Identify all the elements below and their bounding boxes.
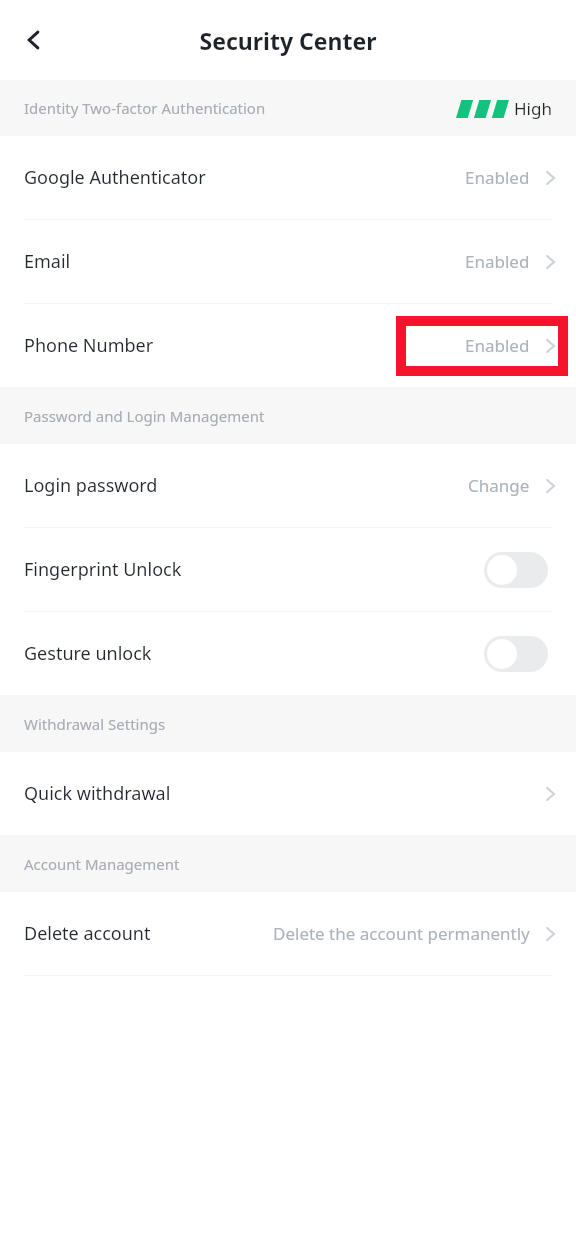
staticText: Phone Number [24, 333, 154, 358]
staticText: Google Authenticator [24, 165, 206, 190]
button[interactable]: Phone Number [0, 304, 576, 387]
staticText: Change [468, 474, 530, 497]
button[interactable]: Google Authenticator [0, 136, 576, 219]
button[interactable]: Email [0, 220, 576, 303]
staticText: Delete account [24, 921, 151, 946]
staticText: Enabled [465, 166, 530, 189]
button[interactable]: Fingerprint Unlock toggle, off [484, 552, 548, 588]
staticText: Enabled [465, 334, 530, 357]
staticText: Delete the account permanently [273, 922, 530, 945]
button[interactable]: Gesture unlock toggle, off [484, 636, 548, 672]
staticText: Login password [24, 473, 158, 498]
staticText: Identity Two-factor Authentication [24, 98, 266, 118]
button[interactable]: Back [10, 16, 58, 64]
button[interactable]: Fingerprint Unlock [0, 528, 576, 611]
button[interactable]: Quick withdrawal [0, 752, 576, 835]
staticText: Account Management [24, 854, 180, 874]
staticText: Fingerprint Unlock [24, 557, 182, 582]
staticText: Password and Login Management [24, 406, 265, 426]
button[interactable]: Login password [0, 444, 576, 527]
button[interactable]: Delete account [0, 892, 576, 975]
staticText: Gesture unlock [24, 641, 152, 666]
staticText: Enabled [465, 250, 530, 273]
staticText: Withdrawal Settings [24, 714, 166, 734]
button[interactable]: Gesture unlock [0, 612, 576, 695]
staticText: Quick withdrawal [24, 781, 171, 806]
staticText: Email [24, 249, 71, 274]
staticText: High [514, 97, 552, 120]
staticText: Security Center [0, 25, 576, 56]
